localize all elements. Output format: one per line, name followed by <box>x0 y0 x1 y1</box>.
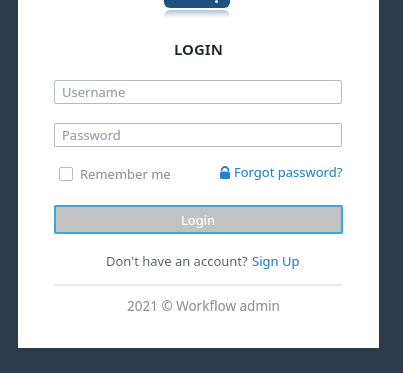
staticText: 2021 © Workflow admin <box>127 297 280 315</box>
button[interactable]: Sign Up <box>252 252 300 270</box>
staticText: LOGIN <box>174 39 223 59</box>
staticText: Username <box>62 83 126 101</box>
staticText: Forgot password? <box>234 163 343 181</box>
staticText: Login <box>181 211 216 229</box>
button[interactable]: Forgot password? <box>220 163 343 181</box>
button[interactable]: Remember me <box>59 165 171 183</box>
button[interactable]: Username <box>54 80 342 104</box>
button[interactable]: Password <box>54 123 342 147</box>
staticText: Don't have an account? <box>106 252 252 270</box>
staticText: Remember me <box>80 165 171 183</box>
button[interactable]: Login <box>54 205 343 234</box>
staticText: Password <box>62 126 121 144</box>
